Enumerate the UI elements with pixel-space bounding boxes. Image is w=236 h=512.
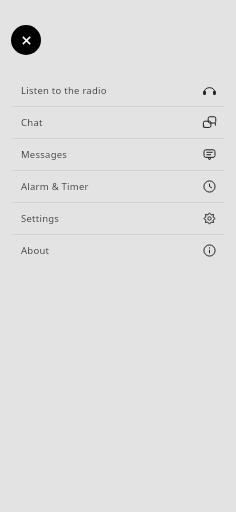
button[interactable]: Listen to the radio — [0, 74, 236, 106]
staticText: Alarm & Timer — [21, 180, 89, 193]
button[interactable]: Close — [11, 25, 41, 55]
button[interactable]: About — [0, 235, 236, 266]
button[interactable]: Alarm & Timer — [0, 171, 236, 202]
staticText: Messages — [21, 148, 68, 161]
staticText: About — [21, 244, 50, 257]
staticText: Settings — [21, 212, 60, 225]
button[interactable]: Settings — [0, 203, 236, 234]
staticText: Chat — [21, 116, 43, 129]
button[interactable]: Messages — [0, 139, 236, 170]
button[interactable]: Chat — [0, 107, 236, 138]
staticText: Listen to the radio — [21, 84, 107, 97]
